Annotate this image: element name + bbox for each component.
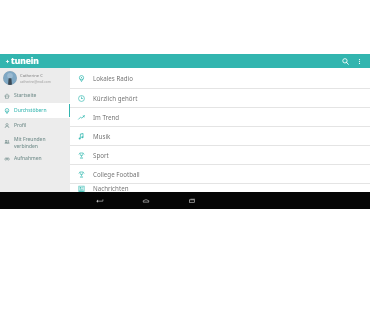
staticText: Sport [93, 151, 109, 159]
button[interactable]: Aufnahmen [0, 151, 70, 166]
button[interactable]: Sport [70, 146, 370, 164]
staticText: Musik [93, 132, 111, 140]
button[interactable]: Recent apps [184, 193, 200, 209]
button[interactable]: Musik [70, 127, 370, 145]
button[interactable]: Catherine C [0, 68, 70, 88]
button[interactable]: Lokales Radio [70, 68, 370, 88]
button[interactable]: Nachrichten [70, 184, 370, 192]
button[interactable]: Profil [0, 118, 70, 133]
staticText: Im Trend [93, 113, 120, 121]
staticText: Catherine C [20, 73, 43, 79]
staticText: Kürzlich gehört [93, 94, 138, 102]
staticText: Mit Freunden verbinden [14, 136, 46, 149]
button[interactable]: Kürzlich gehört [70, 89, 370, 107]
staticText: Nachrichten [93, 184, 129, 192]
button[interactable]: Home [138, 193, 154, 209]
button[interactable]: Mit Freunden verbinden [0, 133, 70, 151]
staticText: catherine@mail.com [20, 80, 51, 84]
button[interactable]: Search [338, 54, 352, 68]
staticText: Startseite [14, 92, 37, 99]
staticText: Lokales Radio [93, 74, 133, 82]
button[interactable]: Back [92, 193, 108, 209]
button[interactable]: College Football [70, 165, 370, 183]
staticText: tunein [11, 55, 39, 67]
button[interactable]: Im Trend [70, 108, 370, 126]
staticText: Aufnahmen [14, 155, 42, 162]
staticText: Durchstöbern [14, 107, 47, 114]
staticText: College Football [93, 170, 140, 178]
button[interactable]: Startseite [0, 88, 70, 103]
button[interactable]: Durchstöbern [0, 103, 70, 118]
button[interactable]: More options [352, 54, 366, 68]
staticText: Profil [14, 122, 27, 129]
button[interactable]: tunein [4, 55, 40, 67]
